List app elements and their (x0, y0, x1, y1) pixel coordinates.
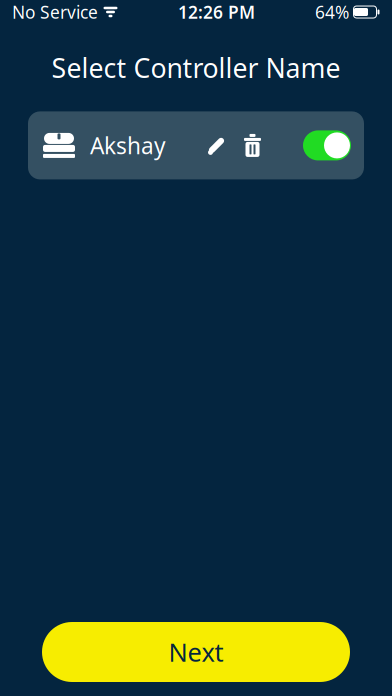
staticText: Select Controller Name (51, 50, 340, 85)
button[interactable]: Edit name (201, 128, 231, 162)
staticText: No Service (12, 0, 98, 23)
staticText: Akshay (90, 130, 166, 160)
button[interactable]: Delete controller (237, 128, 267, 162)
staticText: 64% (315, 0, 349, 23)
button[interactable]: Next (42, 622, 350, 682)
staticText: Next (168, 635, 223, 669)
button[interactable]: Enable controller (303, 130, 351, 160)
staticText: 12:26 PM (178, 0, 255, 23)
